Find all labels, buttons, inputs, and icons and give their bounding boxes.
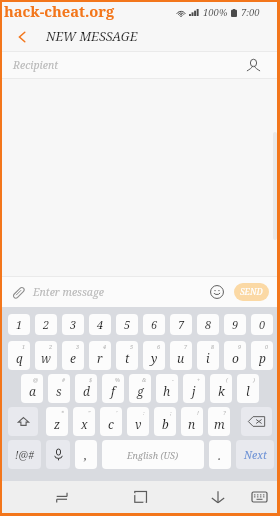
staticText: 6 [157, 343, 161, 350]
staticText: t [125, 350, 130, 366]
button[interactable]: 2 [35, 341, 57, 370]
button[interactable]: Recent apps [49, 481, 75, 513]
staticText: 4 [103, 343, 107, 350]
button[interactable]: 9 [224, 314, 246, 335]
button[interactable]: 2 [35, 314, 57, 335]
staticText: o [232, 350, 239, 366]
staticText: : [143, 409, 145, 416]
button[interactable]: 4 [89, 314, 111, 335]
staticText: 7 [178, 317, 185, 332]
button[interactable]: 7 [170, 341, 192, 370]
staticText: 2 [43, 317, 50, 332]
staticText: d [83, 383, 90, 399]
button[interactable]: ! [181, 407, 203, 436]
staticText: ; [170, 409, 172, 416]
button[interactable]: 1 [8, 314, 30, 335]
staticText: 2 [49, 343, 53, 350]
staticText: 8 [211, 343, 215, 350]
button[interactable]: Backspace [241, 407, 272, 436]
staticText: 9 [238, 343, 242, 350]
button[interactable]: + [183, 374, 205, 403]
staticText: h [163, 383, 171, 399]
staticText: , [84, 447, 88, 463]
button[interactable]: 4 [89, 341, 111, 370]
button[interactable]: 3 [62, 341, 84, 370]
staticText: f [111, 383, 115, 399]
staticText: SEND [240, 286, 263, 298]
button[interactable]: # [48, 374, 70, 403]
button[interactable]: 7 [170, 314, 192, 335]
button[interactable]: ' [100, 407, 122, 436]
staticText: 3 [76, 343, 80, 350]
staticText: NEW MESSAGE [46, 28, 138, 45]
button[interactable]: @ [21, 374, 43, 403]
button[interactable]: % [102, 374, 124, 403]
button[interactable]: English (US) [102, 440, 204, 469]
button[interactable]: 0 [251, 341, 273, 370]
staticText: y [151, 350, 158, 366]
button[interactable]: - [156, 374, 178, 403]
staticText: 5 [130, 343, 134, 350]
staticText: z [54, 416, 61, 432]
button[interactable]: ( [210, 374, 232, 403]
button[interactable]: $ [75, 374, 97, 403]
button[interactable]: : [127, 407, 149, 436]
button[interactable]: Home [127, 481, 154, 513]
button[interactable]: ) [237, 374, 259, 403]
staticText: q [16, 350, 23, 366]
button[interactable]: 5 [116, 341, 138, 370]
staticText: $ [89, 376, 93, 383]
button[interactable]: Shift [8, 407, 38, 436]
staticText: !@# [15, 448, 35, 462]
button[interactable]: Back [11, 24, 33, 50]
button[interactable]: Attach [8, 282, 28, 302]
button[interactable]: 9 [224, 341, 246, 370]
staticText: b [162, 416, 169, 432]
button[interactable]: * [46, 407, 68, 436]
staticText: 4 [97, 317, 104, 332]
button[interactable]: 1 [8, 341, 30, 370]
staticText: a [29, 383, 36, 399]
button[interactable]: . [209, 440, 231, 469]
button[interactable]: 6 [143, 341, 165, 370]
button[interactable]: 6 [143, 314, 165, 335]
button[interactable]: 3 [62, 314, 84, 335]
button[interactable]: Voice input [46, 440, 70, 469]
button[interactable]: Recipient [2, 52, 277, 78]
button[interactable]: SEND [234, 283, 269, 301]
staticText: n [188, 416, 196, 432]
staticText: - [172, 376, 174, 383]
button[interactable]: Next [236, 440, 274, 469]
button[interactable]: 8 [197, 314, 219, 335]
staticText: English (US) [127, 449, 179, 461]
button[interactable]: 8 [197, 341, 219, 370]
button[interactable]: Emoji [206, 282, 228, 302]
staticText: Recipient [13, 58, 59, 72]
staticText: ? [223, 409, 226, 416]
staticText: 0 [265, 343, 269, 350]
staticText: 3 [70, 317, 77, 332]
staticText: Next [244, 448, 267, 462]
button[interactable]: Add contact [243, 55, 263, 75]
staticText: 1 [22, 343, 26, 350]
staticText: 100% [203, 6, 228, 19]
staticText: j [192, 383, 196, 399]
staticText: # [62, 376, 66, 383]
button[interactable]: 0 [251, 314, 273, 335]
button[interactable]: 5 [116, 314, 138, 335]
button[interactable]: ; [154, 407, 176, 436]
staticText: 6 [151, 317, 158, 332]
staticText: 7:00 [241, 6, 260, 19]
staticText: k [218, 383, 225, 399]
staticText: + [197, 376, 201, 383]
staticText: w [41, 350, 51, 366]
button[interactable]: & [129, 374, 151, 403]
button[interactable]: " [73, 407, 95, 436]
button[interactable]: ? [208, 407, 230, 436]
button[interactable]: !@# [8, 440, 41, 469]
button[interactable]: Choose keyboard [245, 481, 274, 513]
button[interactable]: , [75, 440, 97, 469]
staticText: 9 [232, 317, 239, 332]
staticText: p [259, 350, 266, 366]
button[interactable]: Hide keyboard [204, 481, 232, 513]
